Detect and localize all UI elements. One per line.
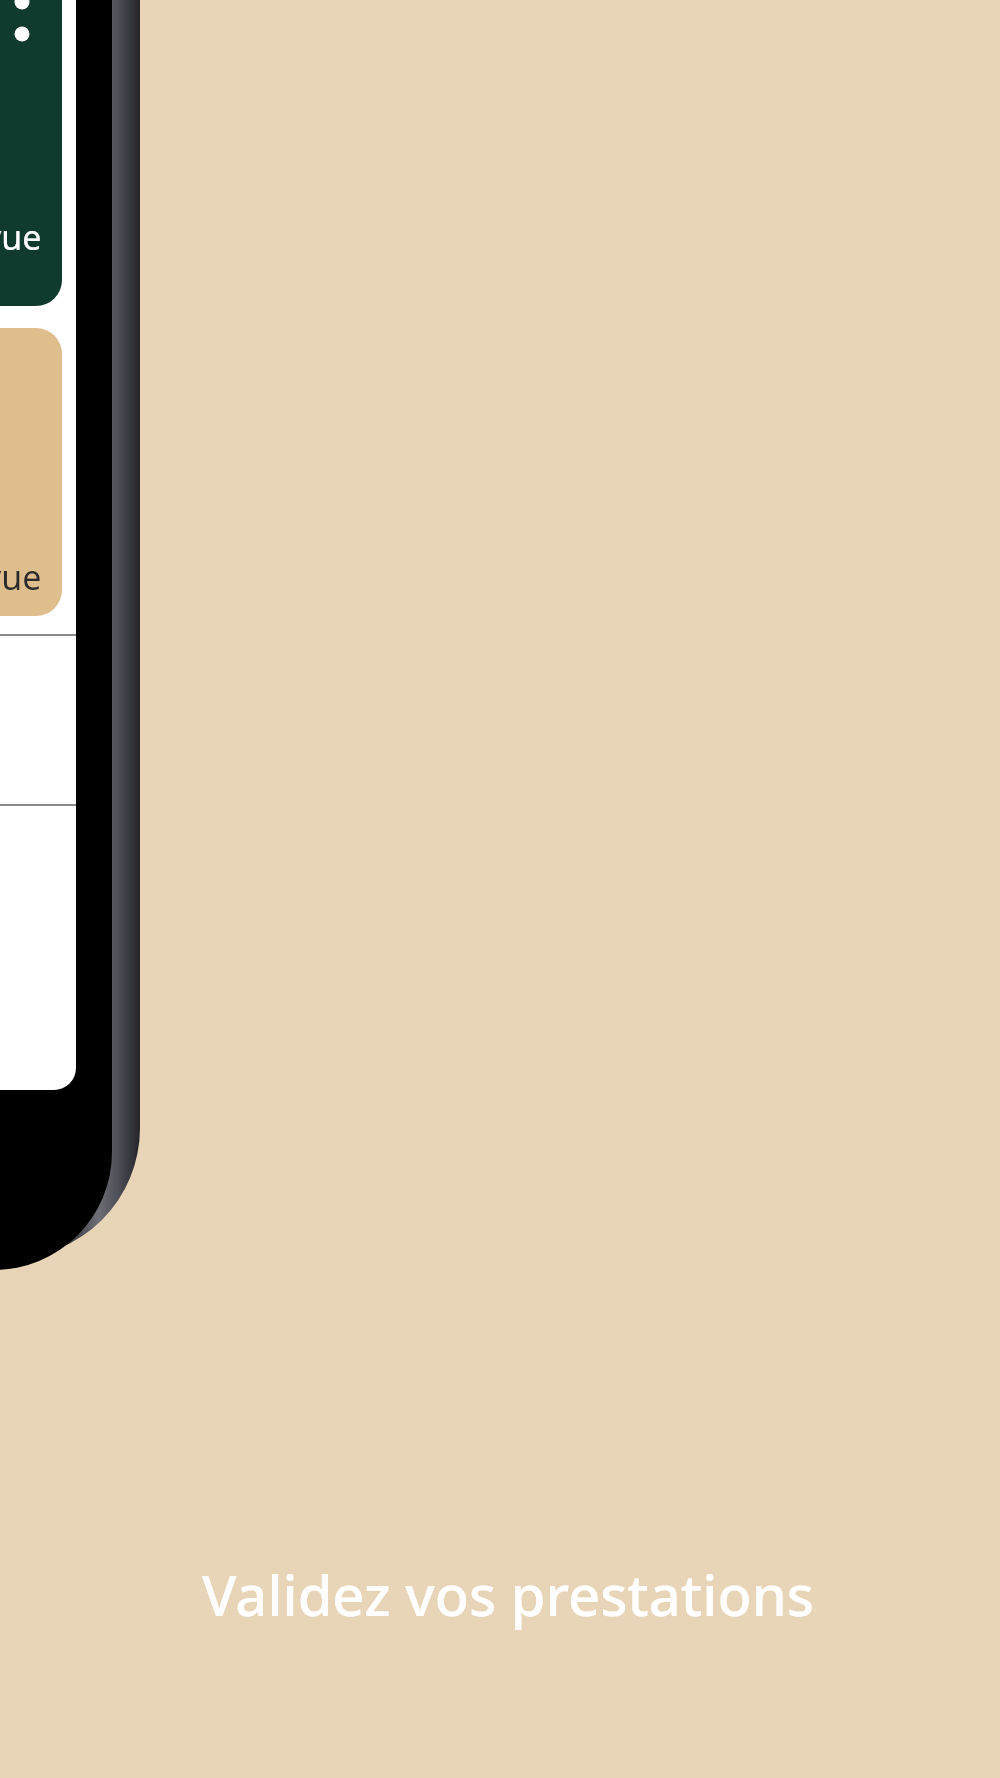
button[interactable]: Validez vos prestations <box>0 1556 1000 1632</box>
button[interactable]: vue <box>0 328 62 616</box>
staticText: vue <box>0 214 42 260</box>
button[interactable]: More options <box>0 0 44 36</box>
button[interactable]: More options <box>0 0 62 306</box>
staticText: vue <box>0 554 42 600</box>
staticText: Validez vos prestations <box>202 1556 814 1632</box>
